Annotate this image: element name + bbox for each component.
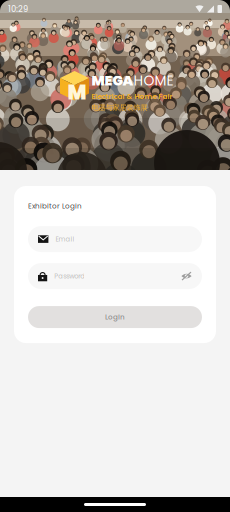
staticText: M [67,78,86,106]
staticText: MEGA [91,71,133,90]
staticText: Exhibitor Login [28,201,82,211]
staticText: 10:29 [8,3,28,15]
staticText: HOME [133,71,173,90]
staticText: Electrical & Home Fair [91,91,172,101]
button[interactable]: Login [28,306,202,328]
staticText: Email [55,234,74,244]
staticText: 电器与家居装饰展 [91,103,147,112]
staticText: Password [54,271,85,281]
staticText: Login [105,312,125,322]
